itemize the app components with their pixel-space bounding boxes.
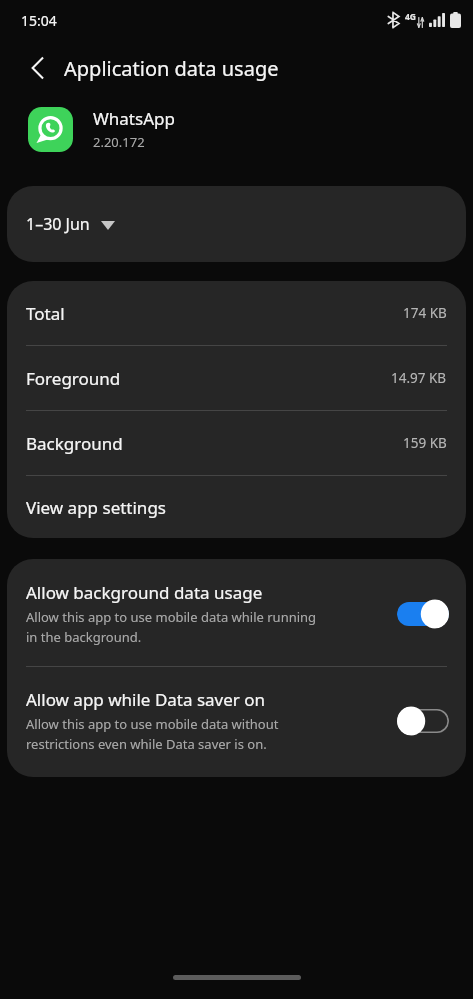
button[interactable]: 1–30 Jun [7,186,466,262]
staticText: 15:04 [21,11,57,30]
staticText: 174 KB [403,304,447,322]
staticText: Allow this app to use mobile data withou… [26,715,279,733]
staticText: 159 KB [403,434,447,452]
staticText: Allow this app to use mobile data while … [26,608,317,626]
button[interactable]: Back [14,44,62,92]
button[interactable]: Allow background data usage [7,559,466,666]
staticText: Total [26,302,65,325]
staticText: Foreground [26,367,121,390]
button[interactable]: Foreground [7,346,466,410]
staticText: View app settings [26,496,166,519]
button[interactable]: Total [7,281,466,345]
staticText: in the background. [26,628,142,646]
staticText: Allow app while Data saver on [26,688,266,711]
staticText: restrictions even while Data saver is on… [26,735,267,753]
staticText: Background [26,432,123,455]
staticText: 14.97 KB [391,369,447,387]
staticText: 2.20.172 [93,133,145,151]
button[interactable]: Allow app while Data saver on [7,667,466,777]
staticText: 1–30 Jun [26,213,90,235]
button[interactable]: Background [7,411,466,475]
button[interactable]: Off [397,706,449,736]
staticText: 4G [405,11,417,23]
staticText: Allow background data usage [26,581,263,604]
button[interactable]: View app settings [7,476,466,538]
staticText: WhatsApp [93,107,175,130]
button[interactable]: On [397,599,449,629]
staticText: Application data usage [64,55,279,82]
